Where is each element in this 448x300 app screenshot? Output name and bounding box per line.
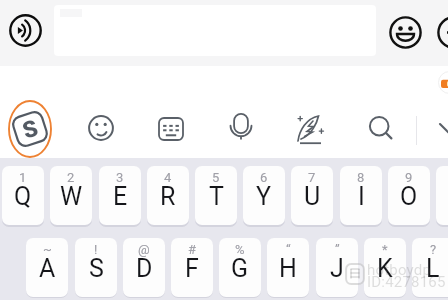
- staticText: 6: [260, 170, 268, 185]
- staticText: !: [94, 242, 98, 257]
- staticText: I: [358, 182, 365, 211]
- button[interactable]: %: [219, 238, 261, 297]
- staticText: G: [231, 254, 249, 283]
- staticText: 2: [67, 170, 75, 185]
- staticText: 7: [308, 170, 316, 185]
- button[interactable]: !: [75, 238, 117, 297]
- staticText: ID:4278165: [367, 273, 446, 291]
- staticText: Y: [256, 182, 272, 211]
- staticText: 9: [405, 170, 413, 185]
- staticText: 5: [212, 170, 220, 185]
- staticText: 4: [164, 170, 172, 185]
- staticText: O: [400, 182, 418, 211]
- button[interactable]: ”: [316, 238, 358, 297]
- button[interactable]: 1: [2, 166, 44, 225]
- staticText: E: [113, 182, 128, 211]
- button[interactable]: 5: [195, 166, 237, 225]
- staticText: U: [304, 182, 321, 211]
- staticText: ”: [335, 242, 340, 257]
- button[interactable]: #: [171, 238, 213, 297]
- staticText: L: [426, 254, 440, 283]
- button[interactable]: Emoji: [389, 16, 422, 49]
- staticText: #: [188, 242, 197, 257]
- staticText: S: [89, 254, 104, 283]
- staticText: “: [286, 242, 291, 257]
- staticText: 1: [19, 170, 27, 185]
- button[interactable]: 4: [147, 166, 189, 225]
- staticText: *: [382, 242, 388, 257]
- staticText: J: [330, 254, 344, 283]
- button[interactable]: Handwriting: [297, 115, 325, 145]
- staticText: %: [235, 242, 245, 257]
- staticText: S: [19, 114, 42, 145]
- button[interactable]: Search: [368, 115, 394, 141]
- button[interactable]: More options: [437, 16, 448, 49]
- button[interactable]: 9: [388, 166, 430, 225]
- staticText: @: [138, 242, 150, 257]
- button[interactable]: Hide keyboard: [432, 110, 448, 146]
- staticText: W: [60, 182, 83, 211]
- staticText: 3: [116, 170, 124, 185]
- staticText: hotboydp: [367, 261, 432, 279]
- staticText: R: [160, 182, 176, 211]
- staticText: ~: [43, 242, 52, 257]
- button[interactable]: 3: [99, 166, 141, 225]
- button[interactable]: Voice input: [227, 113, 255, 141]
- button[interactable]: 0: [436, 166, 448, 225]
- button[interactable]: “: [267, 238, 309, 297]
- button[interactable]: 7: [291, 166, 333, 225]
- button[interactable]: ~: [26, 238, 68, 297]
- staticText: H: [279, 254, 297, 283]
- button[interactable]: *: [364, 238, 406, 297]
- button[interactable]: Sogou input: [8, 100, 52, 158]
- staticText: ?: [430, 242, 437, 257]
- button[interactable]: 6: [243, 166, 285, 225]
- staticText: Q: [14, 182, 32, 211]
- staticText: 8: [357, 170, 365, 185]
- staticText: D: [136, 254, 153, 283]
- button[interactable]: @: [123, 238, 165, 297]
- button[interactable]: Voice input: [9, 14, 42, 47]
- staticText: T: [209, 182, 224, 211]
- staticText: A: [39, 254, 56, 283]
- staticText: F: [185, 254, 199, 283]
- button[interactable]: 2: [50, 166, 92, 225]
- button[interactable]: ?: [412, 238, 448, 297]
- button[interactable]: Keyboard layout: [158, 117, 184, 141]
- button[interactable]: Emoticons: [88, 115, 114, 141]
- button[interactable]: 8: [340, 166, 382, 225]
- staticText: K: [377, 254, 393, 283]
